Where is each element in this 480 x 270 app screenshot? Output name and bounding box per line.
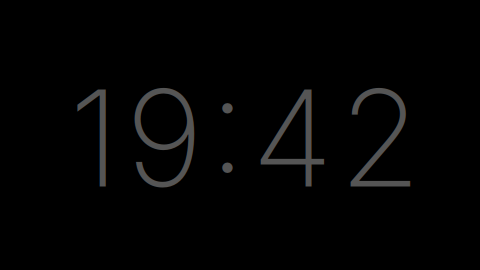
staticText: 19:42 [69, 57, 421, 219]
